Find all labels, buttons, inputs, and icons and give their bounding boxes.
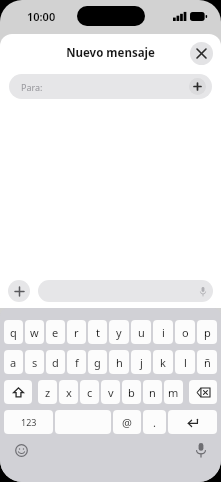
button[interactable]: Emoji [15,444,28,457]
button[interactable]: e [46,320,65,344]
button[interactable]: j [131,350,151,374]
staticText: Nuevo mensaje [66,45,155,61]
button[interactable]: v [101,380,120,404]
staticText: c [87,385,93,400]
button[interactable]: Mayúsculas [4,380,32,404]
staticText: @ [122,415,132,430]
button[interactable]: Dictar [38,280,213,302]
button[interactable]: Espacio [55,410,111,434]
staticText: i [162,325,165,340]
button[interactable]: ñ [197,350,217,374]
staticText: k [160,355,166,370]
button[interactable]: y [109,320,129,344]
staticText: b [128,385,135,400]
staticText: s [32,355,38,370]
staticText: r [74,325,79,340]
button[interactable]: 123 [4,410,53,434]
button[interactable]: u [131,320,151,344]
staticText: Para: [21,81,43,93]
staticText: y [116,325,122,340]
staticText: q [10,325,17,340]
button[interactable]: Cerrar [190,42,213,65]
button[interactable]: @ [113,410,141,434]
staticText: . [153,415,156,430]
staticText: m [168,385,179,400]
button[interactable]: a [4,350,23,374]
button[interactable]: g [88,350,107,374]
staticText: o [182,325,189,340]
button[interactable]: Añadir contacto [189,78,206,95]
staticText: l [184,355,187,370]
button[interactable]: b [122,380,141,404]
staticText: p [204,325,211,340]
button[interactable]: z [38,380,57,404]
staticText: f [75,355,79,370]
button[interactable]: . [143,410,166,434]
staticText: z [45,385,51,400]
staticText: d [52,355,59,370]
button[interactable]: d [46,350,65,374]
button[interactable]: t [88,320,107,344]
staticText: u [138,325,145,340]
staticText: w [30,325,39,340]
staticText: a [10,355,17,370]
button[interactable]: w [25,320,44,344]
button[interactable]: i [153,320,173,344]
button[interactable]: r [67,320,86,344]
staticText: 10:00 [27,9,56,24]
button[interactable]: x [59,380,78,404]
button[interactable]: m [164,380,183,404]
button[interactable]: Para: [9,74,212,99]
button[interactable]: Intro [168,410,217,434]
staticText: g [94,355,101,370]
staticText: ñ [204,355,211,370]
staticText: x [66,385,72,400]
staticText: e [52,325,59,340]
staticText: j [140,355,143,370]
staticText: h [116,355,123,370]
button[interactable]: q [4,320,23,344]
staticText: v [108,385,114,400]
staticText: t [96,325,100,340]
button[interactable]: Dictado [196,443,206,457]
button[interactable]: f [67,350,86,374]
button[interactable]: o [175,320,195,344]
button[interactable]: Borrar [189,380,217,404]
button[interactable]: c [80,380,99,404]
button[interactable]: p [197,320,217,344]
button[interactable]: h [109,350,129,374]
button[interactable]: s [25,350,44,374]
button[interactable]: Más opciones [8,280,30,302]
staticText: 123 [21,416,37,428]
button[interactable]: n [143,380,162,404]
other: Dictar [200,287,206,296]
button[interactable]: k [153,350,173,374]
button[interactable]: l [175,350,195,374]
staticText: n [149,385,156,400]
